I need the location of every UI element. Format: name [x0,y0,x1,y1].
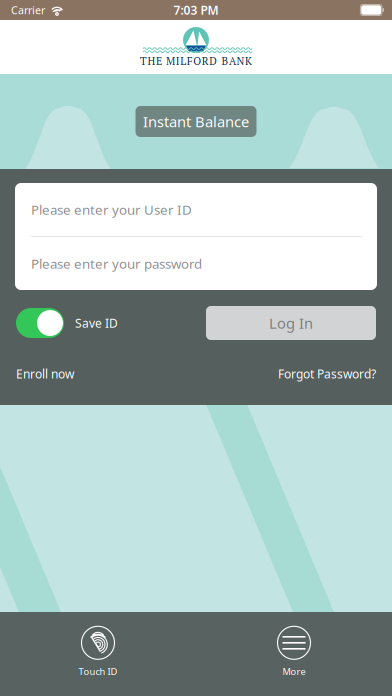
button[interactable]: Please enter your User ID [15,183,377,236]
staticText: Carrier [11,3,45,17]
staticText: Instant Balance [143,112,249,131]
staticText: Log In [269,313,313,333]
staticText: THE MILFORD BANK [140,54,252,68]
staticText: Please enter your password [31,255,202,272]
button[interactable]: Save ID [16,308,118,338]
button[interactable]: Log In [206,306,376,340]
staticText: More [282,665,305,678]
staticText: Touch ID [78,665,117,678]
staticText: Please enter your User ID [31,201,192,218]
button[interactable]: Instant Balance [135,106,256,137]
staticText: Forgot Password? [278,366,376,382]
button[interactable]: Enroll now [16,366,74,382]
button[interactable]: Please enter your password [15,237,377,290]
button[interactable]: Forgot Password? [278,366,376,382]
staticText: Enroll now [16,366,74,382]
staticText: 7:03 PM [173,2,218,18]
button[interactable]: More [239,626,349,678]
staticText: Save ID [75,315,118,331]
button[interactable]: Touch ID [43,626,153,678]
